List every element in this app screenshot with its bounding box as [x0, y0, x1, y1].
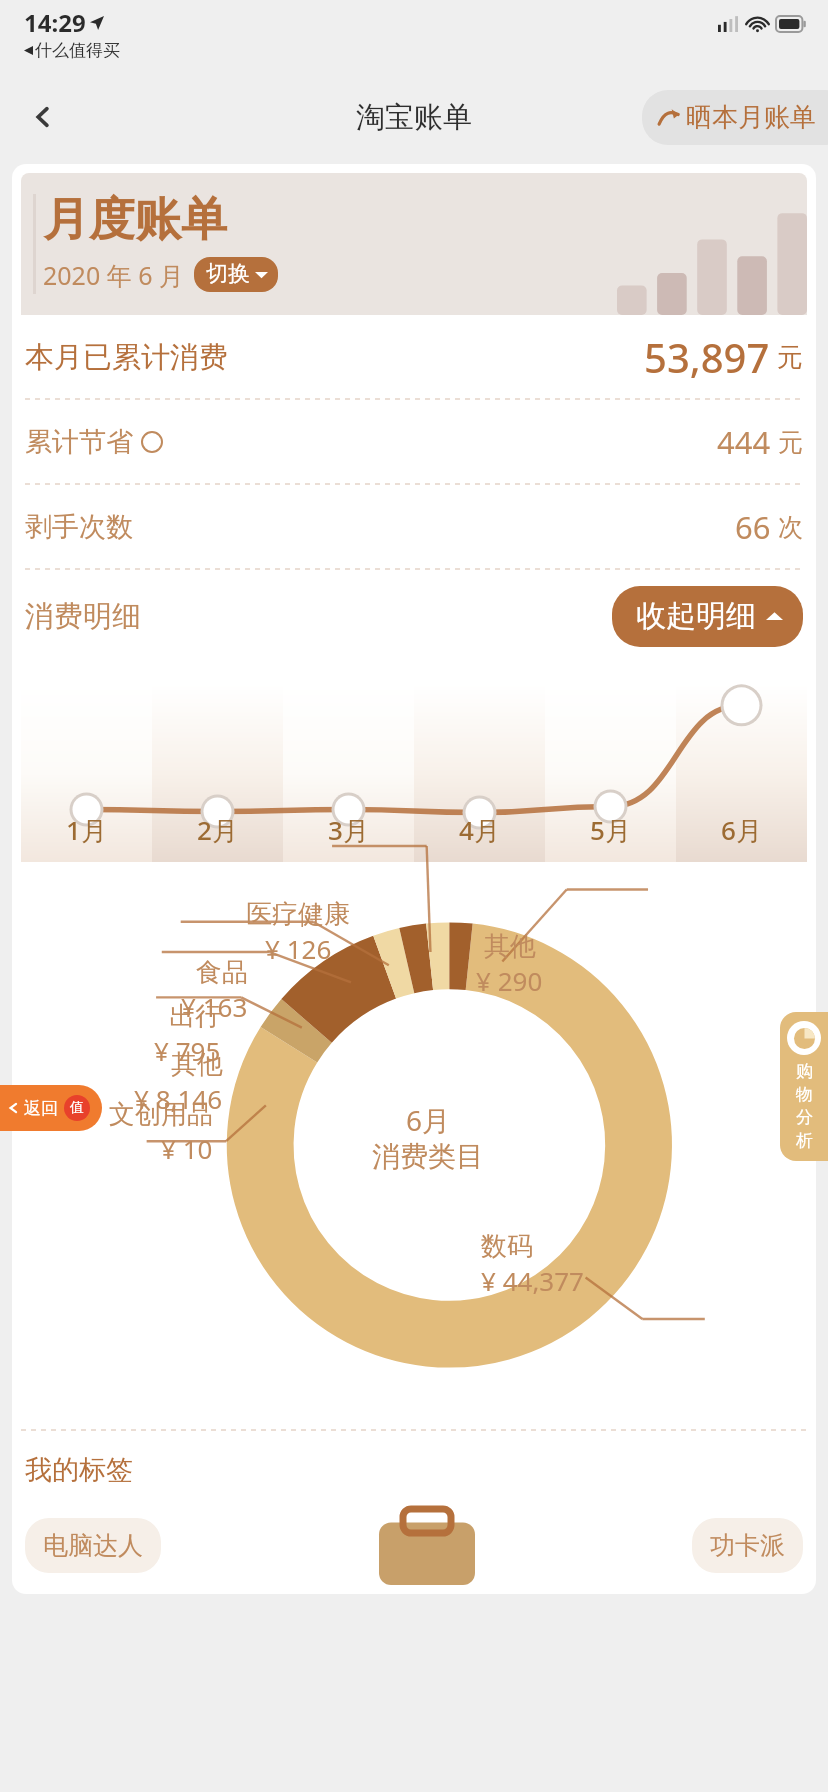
staticText: 444 [717, 421, 771, 463]
staticText: 5月 [590, 812, 631, 848]
staticText: 什么值得买 [35, 40, 120, 61]
button[interactable]: 晒本月账单 [642, 90, 828, 145]
button[interactable]: 电脑达人 [25, 1518, 161, 1573]
button[interactable]: 切换 [194, 257, 278, 292]
staticText: ¥ 44,377 [481, 1263, 584, 1298]
staticText: 消费类目 [372, 1139, 484, 1174]
staticText: 食品 [196, 956, 248, 989]
button[interactable]: 累计节省 [25, 400, 803, 484]
staticText: 购 [796, 1061, 813, 1082]
button[interactable]: 返回 [0, 1085, 102, 1131]
staticText: 物 [796, 1084, 813, 1105]
staticText: 14:29 [24, 6, 86, 39]
staticText: ¥ 126 [265, 931, 332, 966]
staticText: 值 [70, 1099, 84, 1117]
staticText: ¥ 8,146 [134, 1081, 223, 1116]
staticText: 析 [796, 1130, 813, 1151]
staticText: ¥ 10 [161, 1131, 213, 1166]
staticText: 1月 [66, 812, 107, 848]
button[interactable]: 购 [780, 1012, 828, 1161]
staticText: 6月 [406, 1101, 451, 1139]
staticText: 其他 [484, 930, 536, 963]
staticText: 消费明细 [25, 598, 141, 635]
staticText: 53,897 [644, 330, 770, 384]
staticText: 本月已累计消费 [25, 339, 228, 376]
button[interactable]: 功卡派 [692, 1518, 803, 1573]
staticText: 医疗健康 [246, 898, 350, 931]
staticText: 剥手次数 [25, 510, 133, 544]
staticText: 66 [735, 506, 771, 548]
staticText: 晒本月账单 [686, 101, 816, 134]
staticText: 文创用品 [109, 1098, 213, 1131]
button[interactable]: 剥手次数 [25, 485, 803, 569]
staticText: 淘宝账单 [356, 99, 472, 136]
button[interactable]: 本月已累计消费 [25, 315, 803, 399]
staticText: 切换 [206, 260, 250, 288]
staticText: 累计节省 [25, 425, 133, 459]
staticText: 3月 [328, 812, 369, 848]
staticText: 出行 [169, 1000, 221, 1033]
staticText: 元 [777, 341, 803, 374]
staticText: 电脑达人 [43, 1530, 143, 1561]
staticText: ¥ 290 [476, 963, 543, 998]
staticText: 4月 [459, 812, 500, 848]
staticText: 其他 [171, 1048, 223, 1081]
staticText: 元 [778, 427, 803, 458]
staticText: 6月 [721, 812, 762, 848]
staticText: 返回 [24, 1098, 58, 1119]
button[interactable]: 收起明细 [612, 586, 803, 647]
staticText: 收起明细 [636, 597, 756, 635]
staticText: 月度账单 [43, 191, 227, 249]
staticText: ¥ 795 [154, 1033, 221, 1068]
staticText: 2020 年 6 月 [43, 258, 185, 292]
staticText: 我的标签 [25, 1453, 133, 1487]
button[interactable]: Back [18, 92, 68, 142]
staticText: 功卡派 [710, 1530, 785, 1561]
staticText: 2月 [197, 812, 238, 848]
staticText: 次 [778, 512, 803, 543]
staticText: 数码 [481, 1230, 533, 1263]
staticText: ¥ 163 [181, 989, 248, 1024]
staticText: 分 [796, 1107, 813, 1128]
